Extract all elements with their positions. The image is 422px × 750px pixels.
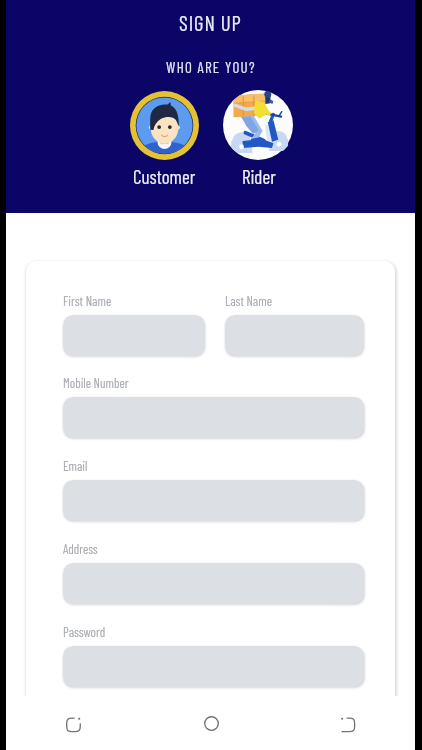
- button[interactable]: Back: [279, 696, 415, 750]
- staticText: Address: [63, 541, 98, 557]
- staticText: Rider: [242, 165, 276, 188]
- staticText: Mobile Number: [63, 375, 129, 391]
- staticText: SIGN UP: [179, 10, 242, 35]
- staticText: First Name: [63, 293, 112, 309]
- button[interactable]: Recents: [6, 696, 143, 750]
- staticText: Customer: [133, 165, 196, 188]
- button[interactable]: [225, 315, 364, 356]
- staticText: WHO ARE YOU?: [166, 58, 256, 76]
- button[interactable]: Home: [143, 696, 279, 750]
- staticText: Password: [63, 624, 106, 640]
- button[interactable]: Rider: [223, 90, 295, 188]
- staticText: Email: [63, 458, 88, 474]
- button[interactable]: Customer: [128, 90, 200, 188]
- button[interactable]: [63, 315, 205, 356]
- staticText: Last Name: [225, 293, 272, 309]
